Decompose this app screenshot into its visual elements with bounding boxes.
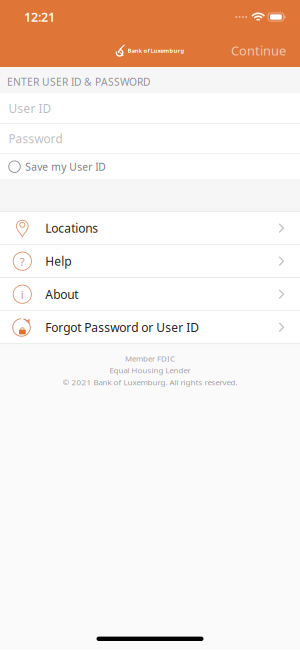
staticText: About [45, 286, 78, 302]
staticText: Save my User ID [25, 160, 105, 174]
button[interactable]: ? [0, 245, 300, 277]
staticText: Locations [45, 220, 98, 236]
button[interactable]: Save my User ID [0, 154, 300, 180]
staticText: Help [45, 253, 71, 269]
staticText: Forgot Password or User ID [45, 319, 199, 335]
staticText: i [21, 287, 24, 302]
staticText: Member FDIC [125, 353, 175, 364]
staticText: Bank of Luxemburg [127, 47, 184, 54]
staticText: Password [8, 131, 62, 147]
button[interactable]: Locations [0, 212, 300, 244]
button[interactable]: Continue [217, 35, 300, 66]
button[interactable]: i [0, 278, 300, 310]
staticText: User ID [8, 100, 51, 116]
staticText: 12:21 [24, 8, 55, 26]
staticText: © 2021 Bank of Luxemburg. All rights res… [62, 377, 237, 387]
staticText: ? [20, 254, 25, 269]
staticText: Continue [231, 42, 286, 59]
staticText: Equal Housing Lender [109, 365, 190, 375]
staticText: ENTER USER ID & PASSWORD [7, 75, 150, 89]
button[interactable]: Forgot Password or User ID [0, 311, 300, 344]
